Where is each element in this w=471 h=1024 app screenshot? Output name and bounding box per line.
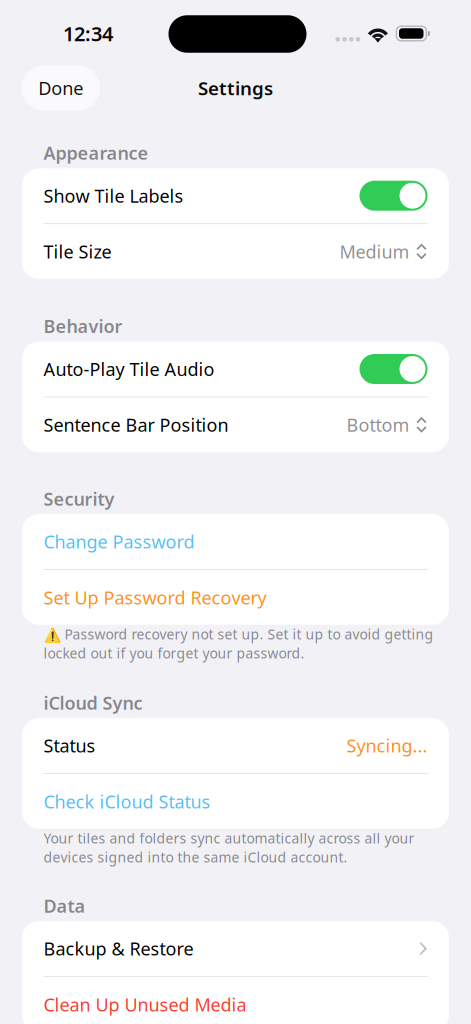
staticText: Data	[43, 893, 85, 918]
button[interactable]: Status	[22, 718, 449, 773]
staticText: ⚠️ Password recovery not set up. Set it …	[43, 625, 433, 663]
staticText: iCloud Sync	[43, 690, 142, 715]
button[interactable]: Show Tile Labels	[22, 168, 449, 223]
staticText: Sentence Bar Position	[43, 412, 228, 437]
staticText: Auto-Play Tile Audio	[43, 357, 214, 381]
staticText: Appearance	[43, 140, 148, 165]
staticText: Clean Up Unused Media	[43, 992, 246, 1017]
staticText: Tile Size	[43, 239, 111, 264]
button[interactable]: Sentence Bar Position	[22, 397, 449, 452]
staticText: Your tiles and folders sync automaticall…	[43, 829, 414, 867]
staticText: Set Up Password Recovery	[43, 585, 266, 610]
staticText: Show Tile Labels	[43, 183, 183, 208]
staticText: Behavior	[43, 314, 122, 338]
button[interactable]: Check iCloud Status	[22, 774, 449, 829]
staticText: Done	[38, 76, 83, 100]
staticText: Status	[43, 733, 95, 758]
staticText: Bottom	[346, 412, 409, 437]
staticText: Syncing...	[346, 733, 427, 758]
button[interactable]: Set Up Password Recovery	[22, 570, 449, 625]
staticText: Check iCloud Status	[43, 789, 210, 814]
button[interactable]: Auto-Play Tile Audio	[22, 342, 449, 396]
button[interactable]: Change Password	[22, 514, 449, 569]
staticText: 12:34	[63, 20, 113, 47]
staticText: Medium	[339, 239, 409, 264]
staticText: Security	[43, 486, 114, 511]
button[interactable]: Tile Size	[22, 224, 449, 279]
staticText: Backup & Restore	[43, 936, 193, 961]
staticText: Settings	[198, 75, 273, 101]
button[interactable]: Done	[21, 65, 100, 110]
button[interactable]: Backup & Restore	[22, 921, 449, 976]
button[interactable]: Clean Up Unused Media	[22, 977, 449, 1024]
staticText: Change Password	[43, 529, 194, 554]
